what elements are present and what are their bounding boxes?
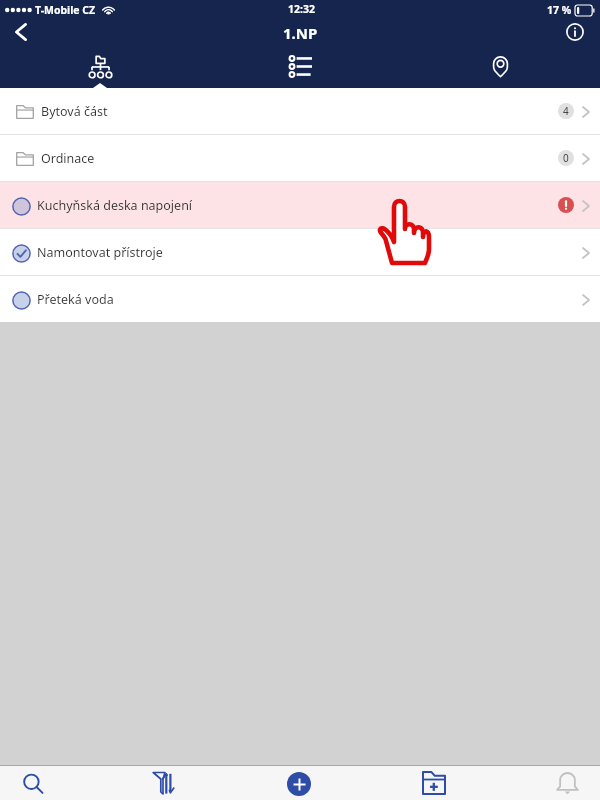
staticText: Kuchyňská deska napojení: [37, 197, 193, 214]
button[interactable]: Map: [467, 48, 533, 88]
staticText: 1.NP: [283, 23, 318, 43]
button[interactable]: Add: [273, 766, 325, 800]
button[interactable]: Info: [554, 18, 600, 48]
button[interactable]: Kuchyňská deska napojení: [0, 182, 600, 228]
button[interactable]: List: [267, 48, 333, 88]
staticText: Přeteká voda: [37, 291, 114, 308]
staticText: 17 %: [547, 3, 572, 17]
button[interactable]: Bytová část: [0, 88, 600, 134]
staticText: Ordinace: [41, 150, 95, 167]
staticText: T-Mobile CZ: [35, 3, 96, 17]
button[interactable]: Přeteká voda: [0, 276, 600, 322]
button[interactable]: Back: [0, 18, 44, 48]
staticText: 0: [563, 151, 569, 165]
button[interactable]: Namontovat přístroje: [0, 229, 600, 275]
staticText: Namontovat přístroje: [37, 244, 163, 261]
staticText: 12:32: [288, 2, 315, 16]
button[interactable]: New folder: [408, 766, 460, 800]
button[interactable]: Ordinace: [0, 135, 600, 181]
button[interactable]: Filter and sort: [138, 766, 190, 800]
staticText: 4: [563, 104, 569, 118]
button[interactable]: Search: [7, 766, 59, 800]
button[interactable]: Structure: [67, 48, 133, 88]
button[interactable]: Notifications: [541, 766, 593, 800]
staticText: Bytová část: [41, 103, 108, 120]
